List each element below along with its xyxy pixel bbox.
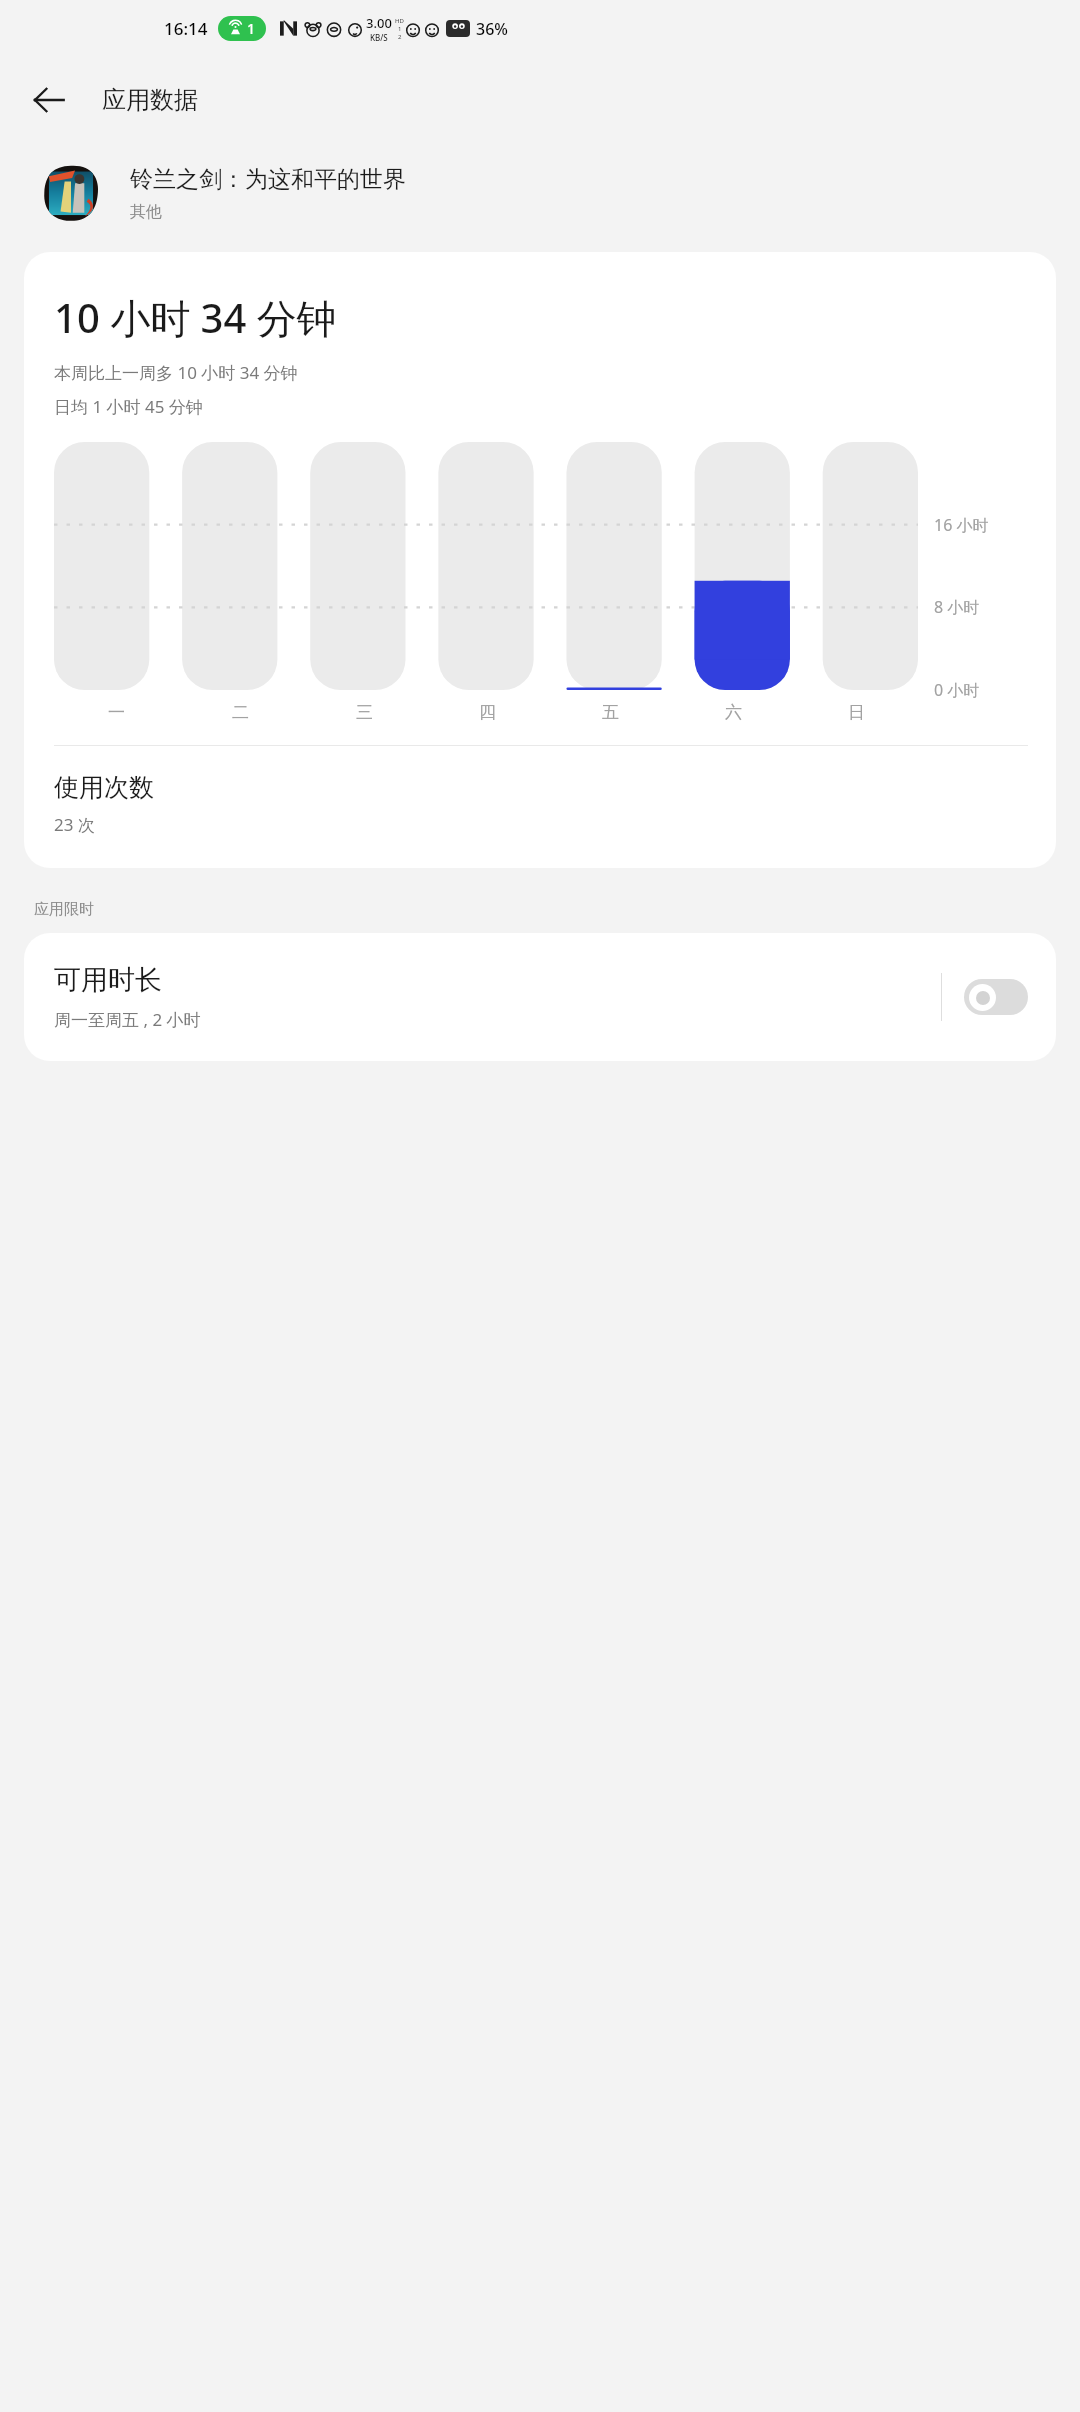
staticText: 六 <box>725 702 742 723</box>
button[interactable]: 可用时长开关 <box>964 979 1028 1015</box>
staticText: 应用数据 <box>102 85 198 115</box>
staticText: 可用时长 <box>54 963 162 997</box>
staticText: 周一至周五 , 2 小时 <box>54 1008 201 1031</box>
button[interactable]: 铃兰之剑：为这和平的世界 <box>42 164 1056 222</box>
staticText: 二 <box>232 702 249 723</box>
staticText: 16 小时 <box>934 514 989 536</box>
staticText: KB/S <box>370 32 388 43</box>
staticText: 23 次 <box>54 813 95 836</box>
staticText: 10 小时 34 分钟 <box>54 290 337 345</box>
staticText: 四 <box>479 702 496 723</box>
staticText: 五 <box>602 702 619 723</box>
staticText: 日均 1 小时 45 分钟 <box>54 395 203 418</box>
button[interactable]: 可用时长 <box>24 933 1056 1061</box>
staticText: 0 小时 <box>934 679 980 701</box>
staticText: 2 <box>398 33 402 41</box>
staticText: 三 <box>356 702 373 723</box>
staticText: 8 小时 <box>934 596 980 618</box>
staticText: 3.00 <box>366 14 392 32</box>
staticText: 本周比上一周多 10 小时 34 分钟 <box>54 361 298 384</box>
staticText: 日 <box>848 702 865 723</box>
staticText: 一 <box>108 702 125 723</box>
staticText: 应用限时 <box>34 900 94 919</box>
button[interactable]: 10 小时 34 分钟 <box>24 252 1056 868</box>
staticText: 16:14 <box>164 17 208 40</box>
staticText: 1 <box>398 25 402 33</box>
staticText: HD <box>395 17 404 25</box>
staticText: 1 <box>247 19 256 38</box>
staticText: 铃兰之剑：为这和平的世界 <box>130 165 406 194</box>
staticText: 36% <box>476 18 508 40</box>
staticText: 使用次数 <box>54 772 154 803</box>
button[interactable]: 返回 <box>16 67 82 133</box>
staticText: 其他 <box>130 202 162 222</box>
